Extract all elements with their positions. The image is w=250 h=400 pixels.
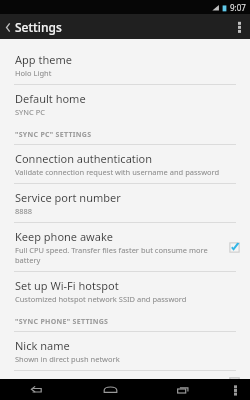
button[interactable]: Default home [0, 85, 250, 123]
staticText: Default home [15, 91, 86, 106]
other: Back [5, 22, 11, 33]
staticText: Settings [15, 19, 62, 35]
button[interactable]: Home [74, 379, 147, 400]
staticText: Validate connection request with usernam… [15, 167, 220, 177]
staticText: Full CPU speed. Transfer files faster bu… [15, 245, 221, 265]
button[interactable]: Back [0, 379, 74, 400]
staticText: App theme [15, 52, 72, 67]
button[interactable]: Nick name [0, 332, 250, 370]
staticText: Service port number [15, 190, 121, 205]
staticText: Customized hotspot network SSID and pass… [15, 294, 187, 304]
staticText: 8888 [15, 206, 33, 216]
staticText: Holo Light [15, 68, 52, 78]
button[interactable]: Keep phone awake [0, 223, 250, 271]
staticText: "SYNC PHONE" SETTINGS [15, 317, 109, 327]
button[interactable]: Menu [220, 379, 250, 400]
button[interactable]: Silent mode [0, 371, 250, 379]
button[interactable]: Service port number [0, 184, 250, 222]
button[interactable]: More options [228, 14, 250, 39]
button[interactable]: App theme [0, 46, 250, 84]
other: Checked [229, 242, 240, 253]
button[interactable]: Set up Wi-Fi hotspot [0, 272, 250, 310]
staticText: Connection authentication [15, 151, 153, 166]
staticText: 9:07 [230, 2, 246, 13]
staticText: "SYNC PC" SETTINGS [15, 130, 92, 140]
staticText: Keep phone awake [15, 229, 113, 244]
staticText: SYNC PC [15, 107, 46, 117]
button[interactable]: Back [0, 15, 68, 39]
staticText: Nick name [15, 338, 70, 353]
button[interactable]: Connection authentication [0, 145, 250, 183]
staticText: Shown in direct push network [15, 354, 120, 364]
staticText: Set up Wi-Fi hotspot [15, 278, 119, 293]
button[interactable]: Recent apps [147, 379, 220, 400]
